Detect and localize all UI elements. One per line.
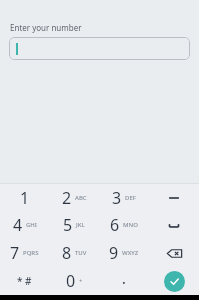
button[interactable]: 8 — [49, 239, 99, 267]
staticText: JKL — [76, 221, 85, 229]
button[interactable]: * # — [0, 267, 49, 295]
button[interactable]: 9 — [99, 239, 149, 267]
staticText: PQRS — [23, 249, 39, 257]
button[interactable]: 1 — [0, 184, 49, 211]
staticText: 4 — [13, 214, 23, 236]
button[interactable]: 6 — [99, 211, 149, 239]
staticText: 9 — [109, 242, 119, 264]
button[interactable]: 0 — [49, 267, 99, 295]
staticText: MNO — [123, 221, 138, 229]
staticText: . — [122, 269, 126, 288]
staticText: 5 — [63, 214, 73, 236]
button[interactable]: 4 — [0, 211, 49, 239]
staticText: Enter your number — [10, 22, 82, 33]
staticText: 8 — [62, 242, 72, 264]
staticText: + — [79, 277, 83, 285]
staticText: 2 — [62, 187, 72, 209]
staticText: 0 — [66, 270, 76, 292]
staticText: 3 — [112, 187, 122, 209]
staticText: ABC — [75, 194, 87, 202]
staticText: 7 — [10, 242, 20, 264]
staticText: 6 — [110, 214, 120, 236]
button[interactable]: 5 — [49, 211, 99, 239]
button[interactable]: . — [99, 267, 149, 295]
button[interactable] — [9, 37, 190, 60]
staticText: GHI — [26, 221, 37, 229]
button[interactable]: Confirm — [164, 271, 185, 292]
button[interactable]: Backspace — [149, 239, 199, 267]
staticText: WXYZ — [122, 249, 139, 257]
button[interactable]: Dash — [149, 184, 199, 211]
button[interactable]: 3 — [99, 184, 149, 211]
staticText: * # — [17, 274, 32, 288]
staticText: DEF — [125, 194, 136, 202]
staticText: 1 — [20, 187, 30, 209]
button[interactable]: 2 — [49, 184, 99, 211]
staticText: TUV — [75, 249, 87, 257]
button[interactable]: Space — [149, 211, 199, 239]
button[interactable]: 7 — [0, 239, 49, 267]
